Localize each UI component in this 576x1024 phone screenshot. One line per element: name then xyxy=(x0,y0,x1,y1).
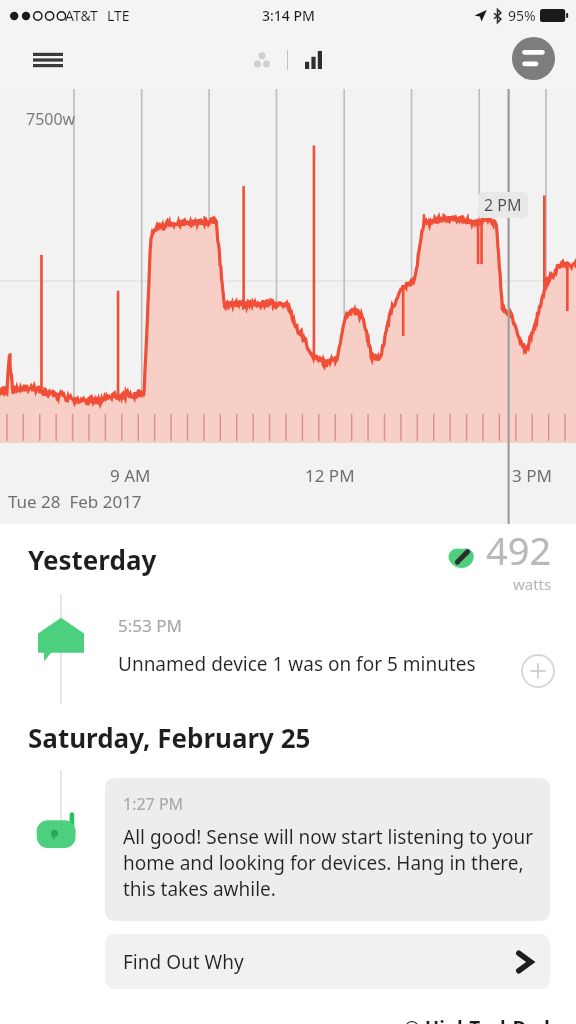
button[interactable]: Messages xyxy=(506,34,558,86)
staticText: All good! Sense will now start listening… xyxy=(123,824,534,902)
button[interactable]: Menu xyxy=(22,34,74,86)
staticText: 9 AM xyxy=(110,464,151,487)
staticText: AT&T xyxy=(65,6,98,25)
staticText: watts xyxy=(513,574,552,592)
staticText: 12 PM xyxy=(305,464,355,487)
staticText: 492 xyxy=(486,524,552,576)
staticText: LTE xyxy=(107,6,130,25)
button[interactable]: Devices xyxy=(245,43,279,77)
staticText: Unnamed device 1 was on for 5 minutes xyxy=(118,651,476,677)
staticText: 7500w xyxy=(26,108,76,130)
staticText: 1:27 PM xyxy=(123,793,184,815)
staticText: Yesterday xyxy=(28,542,157,577)
button[interactable]: 1:27 PM xyxy=(105,778,550,921)
staticText: 2 PM xyxy=(484,194,522,216)
button[interactable]: Add device xyxy=(521,654,555,688)
button[interactable]: Find Out Why xyxy=(105,934,550,989)
staticText: 5:53 PM xyxy=(118,614,182,637)
staticText: Tue 28 Feb 2017 xyxy=(8,490,142,513)
staticText: 95% xyxy=(508,6,536,25)
staticText: Saturday, February 25 xyxy=(28,720,311,755)
staticText: 3:14 PM xyxy=(262,6,315,25)
staticText: 3 PM xyxy=(512,464,552,487)
staticText: © HighTechDad xyxy=(404,1015,550,1024)
staticText: Find Out Why xyxy=(123,949,244,975)
button[interactable]: 5:53 PM xyxy=(0,594,576,704)
button[interactable]: Usage xyxy=(298,43,332,77)
